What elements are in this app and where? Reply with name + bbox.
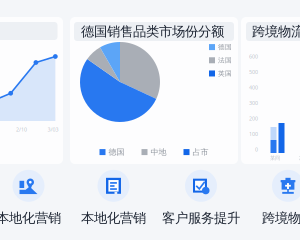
staticText: 次	[299, 155, 300, 161]
staticText: 0	[255, 146, 258, 153]
staticText: 100	[249, 130, 258, 137]
staticText: 德国销售品类市场份分额	[81, 23, 224, 40]
staticText: 法国	[218, 56, 232, 64]
staticText: 400	[249, 84, 258, 91]
staticText: 德国	[218, 43, 232, 51]
staticText: 英国	[218, 69, 232, 78]
staticText: 客户服务提升	[162, 210, 240, 226]
staticText: 500	[249, 68, 258, 76]
staticText: 占市	[192, 147, 208, 157]
staticText: 某间	[270, 155, 280, 161]
button[interactable]: 本地化营销	[70, 170, 157, 226]
button[interactable]: 跨境物流	[245, 170, 300, 226]
staticText: 600	[249, 53, 258, 60]
staticText: 300	[249, 99, 258, 107]
staticText: 跨境物流解决方案	[252, 23, 300, 40]
button[interactable]: 本地化营销	[0, 170, 70, 226]
staticText: 德国	[108, 147, 124, 157]
staticText: 3/03	[47, 126, 58, 133]
staticText: 跨境物流	[262, 210, 300, 226]
button[interactable]: 客户服务提升	[157, 170, 245, 226]
staticText: 本地化营销	[81, 210, 146, 226]
staticText: 本地化营销	[0, 210, 61, 226]
staticText: 中地	[150, 147, 166, 157]
staticText: 2/10	[16, 126, 27, 133]
staticText: 200	[249, 115, 258, 122]
